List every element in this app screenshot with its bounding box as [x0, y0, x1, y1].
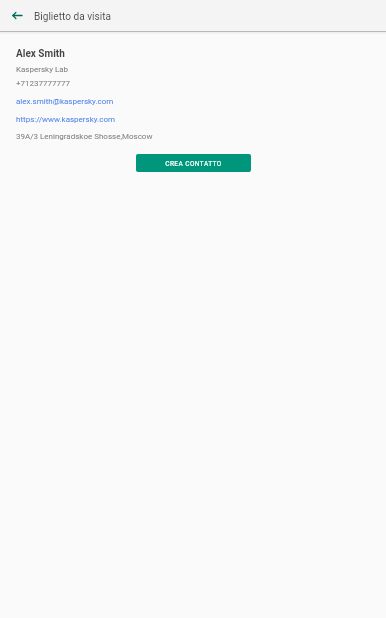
button[interactable]: alex.smith@kaspersky.com — [16, 97, 114, 106]
button[interactable]: CREA CONTATTO — [136, 154, 251, 172]
button[interactable]: https://www.kaspersky.com — [16, 115, 115, 124]
button[interactable]: Back — [0, 0, 34, 31]
staticText: Alex Smith — [16, 48, 65, 60]
staticText: 39A/3 Leningradskoe Shosse,Moscow — [16, 132, 153, 141]
staticText: +71237777777 — [16, 79, 70, 88]
staticText: Biglietto da visita — [34, 11, 111, 23]
staticText: CREA CONTATTO — [165, 160, 222, 168]
staticText: Kaspersky Lab — [16, 65, 69, 74]
